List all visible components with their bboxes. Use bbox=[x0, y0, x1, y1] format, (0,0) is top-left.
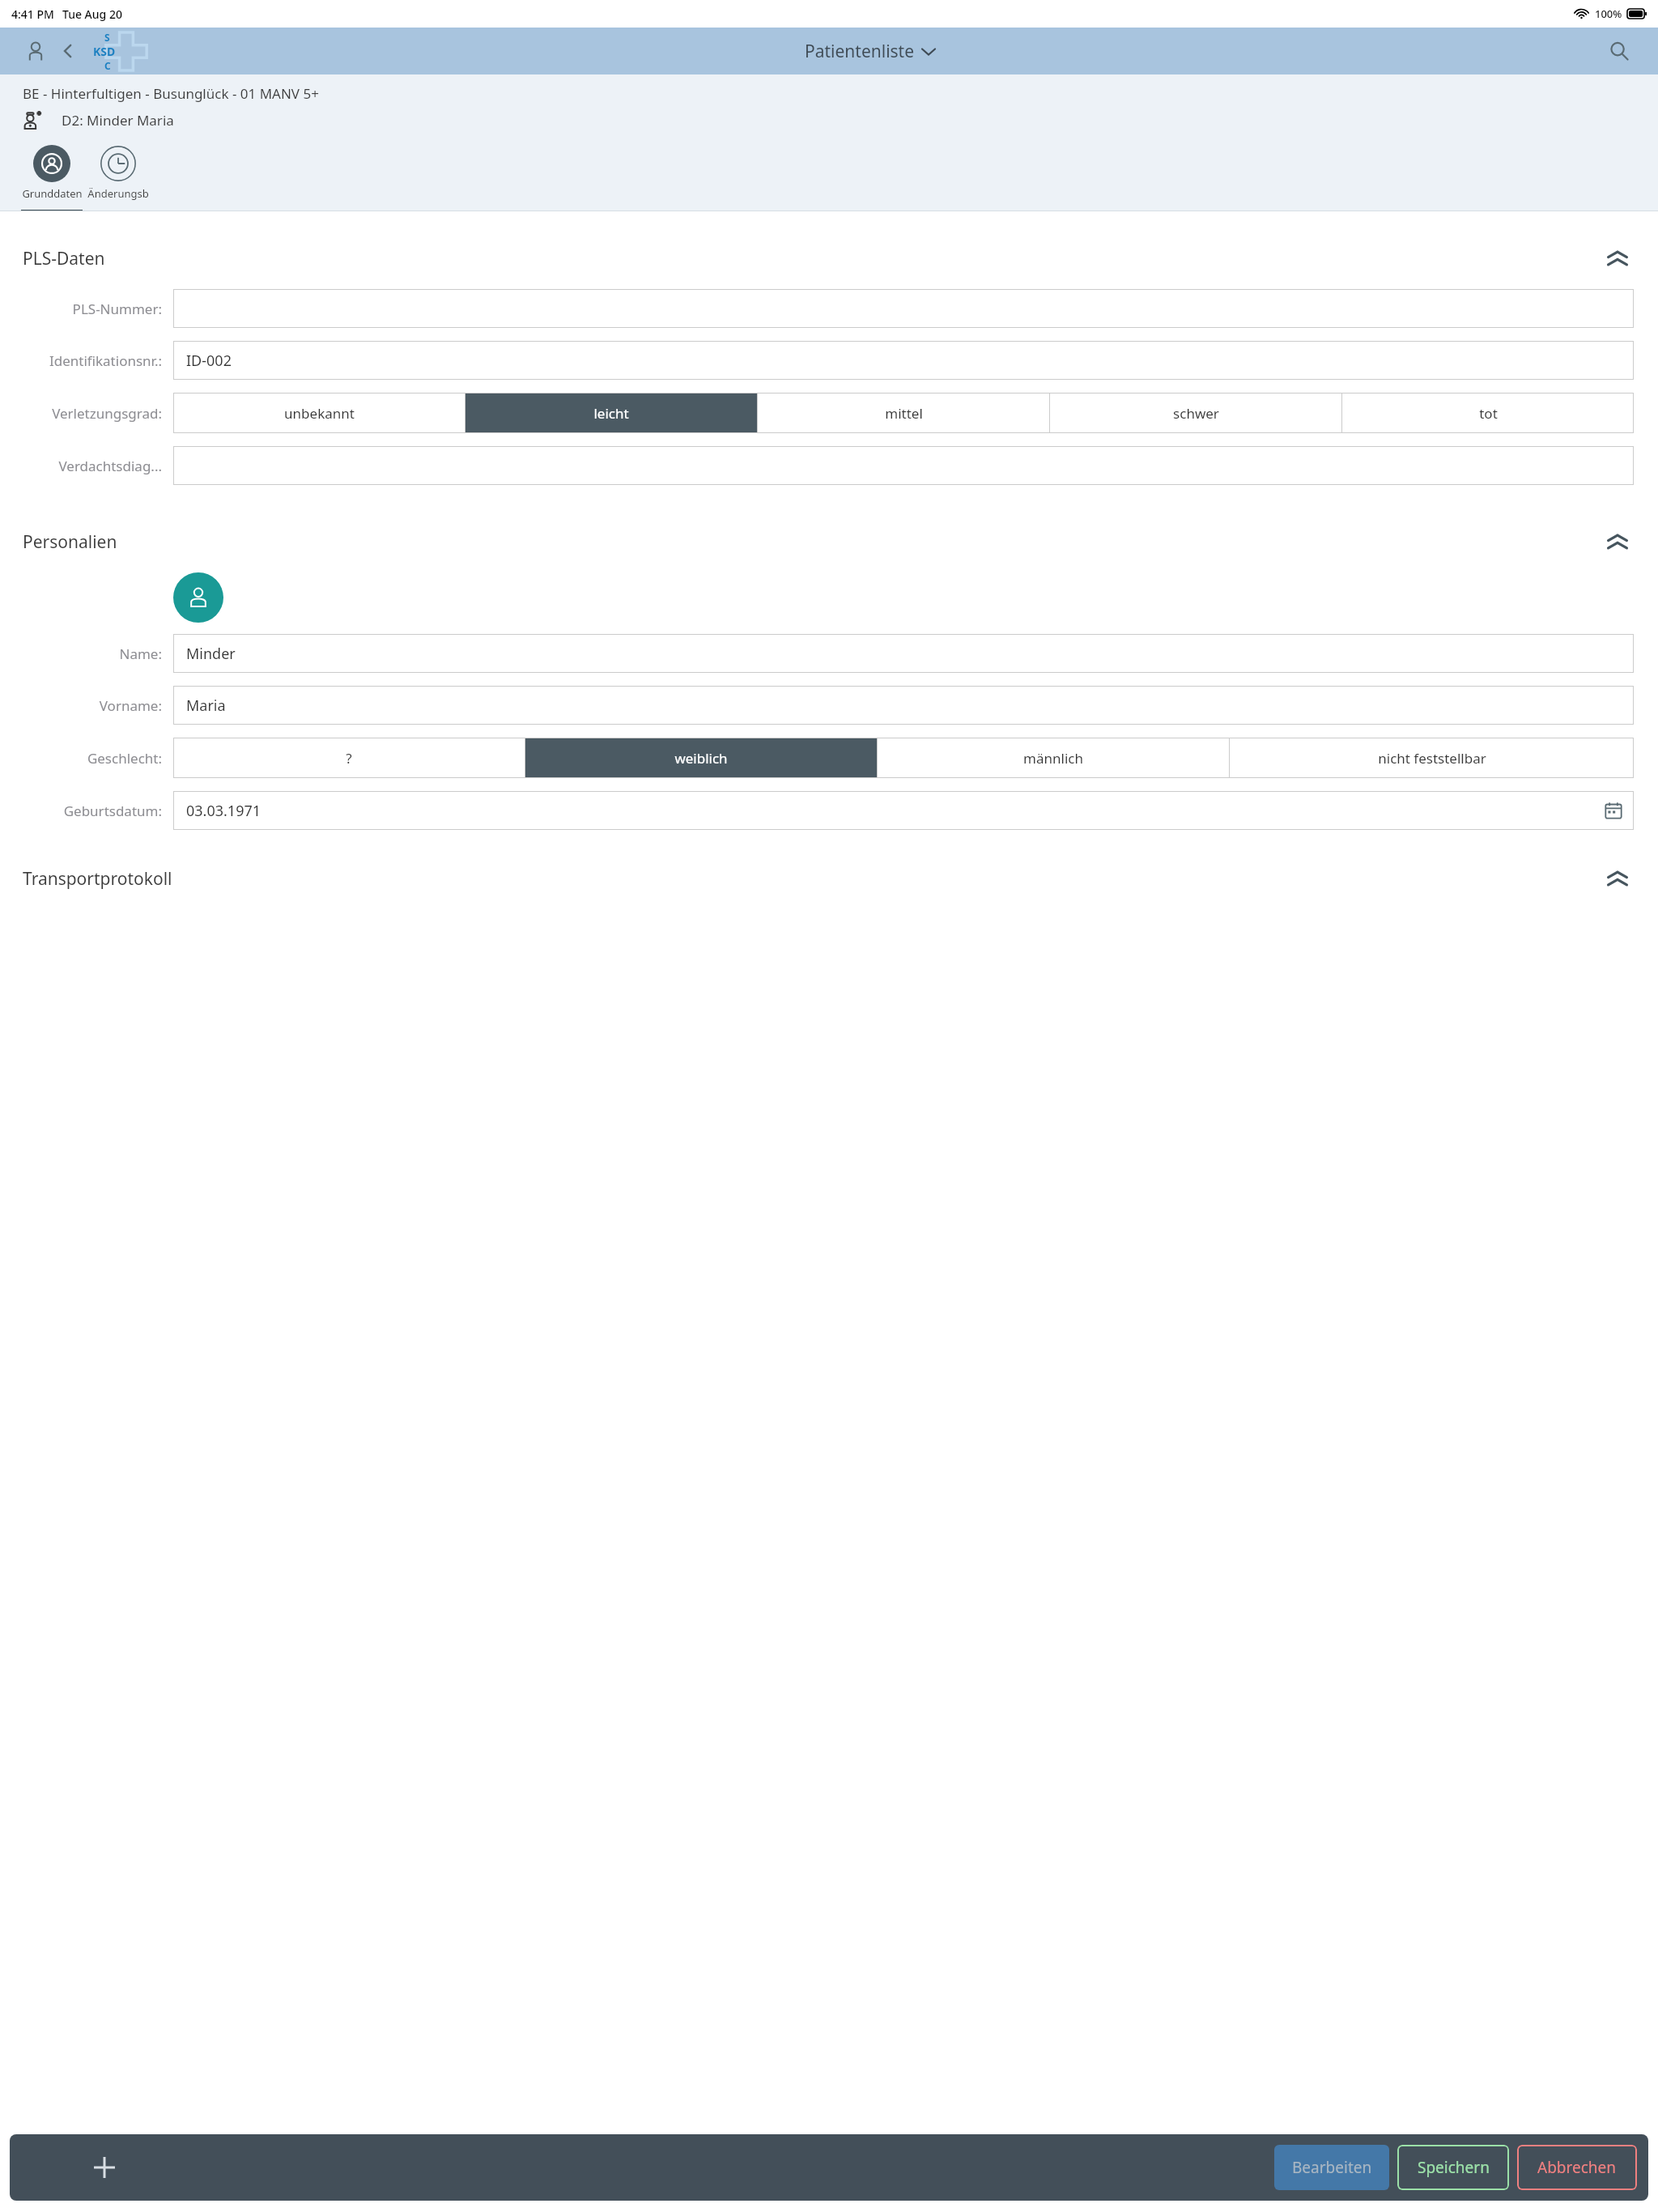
button[interactable]: Patientenliste bbox=[805, 40, 935, 63]
staticText: leicht bbox=[593, 404, 629, 423]
button[interactable]: Profil bbox=[19, 35, 52, 67]
staticText: Tue Aug 20 bbox=[62, 6, 122, 22]
button[interactable]: Patient Avatar bbox=[173, 572, 223, 623]
staticText: tot bbox=[1479, 404, 1498, 423]
button[interactable] bbox=[173, 289, 1634, 328]
button[interactable]: unbekannt bbox=[173, 393, 465, 433]
button[interactable]: Einklappen bbox=[1601, 242, 1634, 274]
staticText: Name: bbox=[119, 644, 162, 663]
staticText: weiblich bbox=[674, 749, 728, 768]
button[interactable]: Grunddaten bbox=[21, 145, 83, 211]
staticText: S bbox=[104, 31, 110, 44]
button[interactable]: mittel bbox=[758, 393, 1049, 433]
button[interactable]: Abbrechen bbox=[1517, 2145, 1637, 2190]
staticText: Grunddaten bbox=[22, 186, 83, 201]
staticText: Bearbeiten bbox=[1292, 2157, 1372, 2178]
button[interactable]: Suche bbox=[1603, 35, 1635, 67]
button[interactable]: Speichern bbox=[1397, 2145, 1509, 2190]
button[interactable]: ? bbox=[173, 738, 525, 778]
staticText: D2: Minder Maria bbox=[62, 111, 174, 130]
button[interactable]: Einklappen bbox=[1601, 862, 1634, 895]
staticText: ID-002 bbox=[186, 351, 232, 371]
staticText: Geschlecht: bbox=[87, 749, 162, 768]
staticText: Transportprotokoll bbox=[23, 867, 172, 891]
staticText: mittel bbox=[885, 404, 923, 423]
button[interactable]: schwer bbox=[1050, 393, 1341, 433]
button[interactable]: Maria bbox=[173, 686, 1634, 725]
button[interactable]: männlich bbox=[878, 738, 1229, 778]
button[interactable] bbox=[173, 446, 1634, 485]
button[interactable]: Minder bbox=[173, 634, 1634, 673]
button[interactable]: Hinzufügen bbox=[86, 2149, 123, 2186]
staticText: PLS-Nummer: bbox=[72, 300, 162, 318]
staticText: ? bbox=[346, 749, 352, 768]
staticText: C bbox=[104, 59, 111, 72]
staticText: Identifikationsnr.: bbox=[49, 351, 162, 370]
staticText: Patientenliste bbox=[805, 40, 915, 63]
button[interactable]: Zurück bbox=[52, 35, 84, 67]
staticText: Minder bbox=[186, 644, 236, 664]
staticText: 100% bbox=[1595, 6, 1622, 21]
staticText: 03.03.1971 bbox=[186, 801, 261, 821]
button[interactable]: KSDC Logo bbox=[92, 30, 138, 72]
staticText: Speichern bbox=[1418, 2157, 1490, 2178]
staticText: PLS-Daten bbox=[23, 247, 105, 270]
button[interactable]: Einklappen bbox=[1601, 525, 1634, 558]
button[interactable]: weiblich bbox=[525, 738, 877, 778]
staticText: 4:41 PM bbox=[11, 6, 54, 22]
staticText: Verletzungsgrad: bbox=[52, 404, 162, 423]
staticText: männlich bbox=[1023, 749, 1083, 768]
staticText: Abbrechen bbox=[1537, 2157, 1617, 2178]
button[interactable]: nicht feststellbar bbox=[1230, 738, 1634, 778]
staticText: Maria bbox=[186, 696, 226, 716]
staticText: Personalien bbox=[23, 530, 117, 554]
staticText: unbekannt bbox=[284, 404, 355, 423]
button[interactable]: leicht bbox=[466, 393, 757, 433]
button[interactable]: Änderungsb... bbox=[87, 145, 149, 211]
button[interactable]: tot bbox=[1342, 393, 1634, 433]
staticText: schwer bbox=[1173, 404, 1219, 423]
button[interactable]: Bearbeiten bbox=[1274, 2145, 1389, 2190]
staticText: Verdachtsdiag... bbox=[58, 457, 162, 475]
button[interactable]: ID-002 bbox=[173, 341, 1634, 380]
staticText: Vorname: bbox=[99, 696, 162, 715]
staticText: BE - Hinterfultigen - Busunglück - 01 MA… bbox=[23, 84, 319, 103]
staticText: Änderungsb... bbox=[87, 186, 149, 201]
button[interactable]: 03.03.1971 bbox=[173, 791, 1634, 830]
staticText: KSD bbox=[93, 44, 116, 59]
staticText: Geburtsdatum: bbox=[63, 802, 162, 820]
staticText: nicht feststellbar bbox=[1378, 749, 1486, 768]
